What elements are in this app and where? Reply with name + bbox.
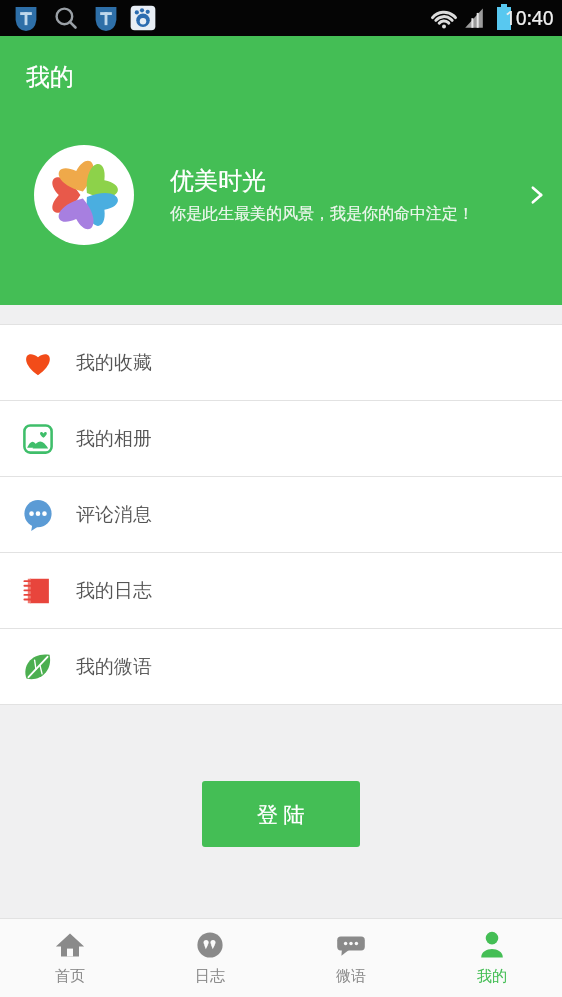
button[interactable]: 微语 bbox=[280, 919, 421, 997]
staticText: 首页 bbox=[55, 967, 85, 986]
button[interactable]: 登 陆 bbox=[202, 781, 360, 847]
staticText: 我的收藏 bbox=[76, 351, 152, 375]
staticText: 我的日志 bbox=[76, 579, 152, 603]
button[interactable]: 首页 bbox=[0, 919, 140, 997]
button[interactable]: 我的日志 bbox=[0, 553, 562, 628]
button[interactable]: 日志 bbox=[140, 919, 280, 997]
staticText: 我的 bbox=[26, 62, 74, 92]
staticText: 微语 bbox=[336, 967, 366, 986]
button[interactable]: 我的 bbox=[421, 919, 562, 997]
staticText: 评论消息 bbox=[76, 503, 152, 527]
staticText: 日志 bbox=[195, 967, 225, 986]
button[interactable]: 我的微语 bbox=[0, 629, 562, 704]
button[interactable]: 评论消息 bbox=[0, 477, 562, 552]
button[interactable]: 优美时光 bbox=[0, 140, 562, 250]
staticText: 登 陆 bbox=[257, 800, 305, 829]
staticText: 我的相册 bbox=[76, 427, 152, 451]
button[interactable]: 我的收藏 bbox=[0, 325, 562, 400]
staticText: 优美时光 bbox=[170, 166, 266, 196]
staticText: 10:40 bbox=[505, 5, 554, 31]
staticText: 我的 bbox=[477, 967, 507, 986]
staticText: 我的微语 bbox=[76, 655, 152, 679]
button[interactable]: 我的相册 bbox=[0, 401, 562, 476]
staticText: 你是此生最美的风景，我是你的命中注定！ bbox=[170, 204, 474, 224]
